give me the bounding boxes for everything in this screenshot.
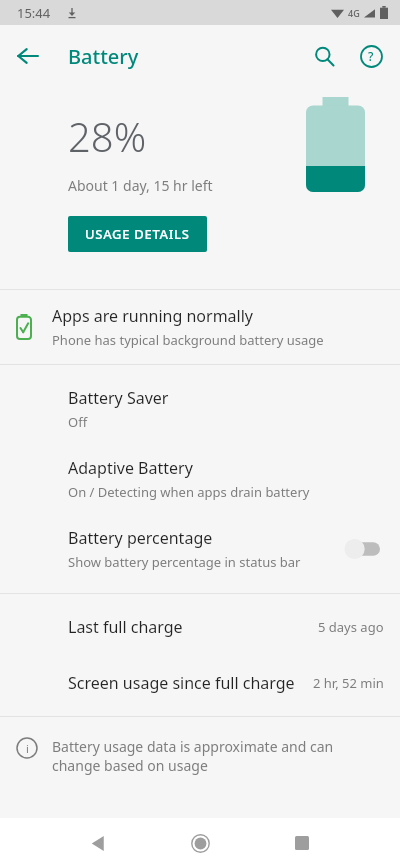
button[interactable]: USAGE DETAILS (68, 216, 207, 252)
staticText: About 1 day, 15 hr left (68, 176, 213, 195)
staticText: On / Detecting when apps drain battery (68, 483, 310, 501)
button[interactable]: Last full charge (0, 599, 400, 655)
button[interactable]: Recents (280, 821, 324, 865)
staticText: USAGE DETAILS (85, 225, 190, 243)
staticText: Battery percentage (68, 527, 213, 549)
staticText: Last full charge (68, 616, 318, 638)
button[interactable]: Battery percentage (0, 514, 400, 584)
button[interactable]: Apps are running normally (0, 290, 400, 364)
staticText: i (26, 741, 29, 756)
button[interactable]: Adaptive Battery (0, 444, 400, 514)
staticText: 5 days ago (318, 618, 384, 636)
staticText: ? (368, 48, 374, 64)
staticText: Off (68, 413, 88, 431)
staticText: Show battery percentage in status bar (68, 553, 301, 571)
button[interactable]: Back (6, 34, 50, 78)
button[interactable]: Screen usage since full charge (0, 655, 400, 711)
button[interactable]: Search (302, 34, 346, 78)
staticText: Battery Saver (68, 387, 169, 409)
staticText: 4G (348, 7, 360, 19)
staticText: Screen usage since full charge (68, 672, 313, 694)
staticText: Apps are running normally (52, 305, 253, 327)
button[interactable]: Battery Saver (0, 374, 400, 444)
button[interactable]: Back (76, 821, 120, 865)
button[interactable]: Home (178, 821, 222, 865)
staticText: Battery (68, 43, 139, 70)
staticText: 15:44 (17, 4, 51, 22)
staticText: 2 hr, 52 min (313, 674, 384, 692)
staticText: Adaptive Battery (68, 457, 193, 479)
button[interactable]: Help (349, 34, 393, 78)
staticText: Phone has typical background battery usa… (52, 331, 324, 349)
staticText: Battery usage data is approximate and ca… (52, 737, 378, 775)
staticText: 28% (68, 109, 147, 163)
